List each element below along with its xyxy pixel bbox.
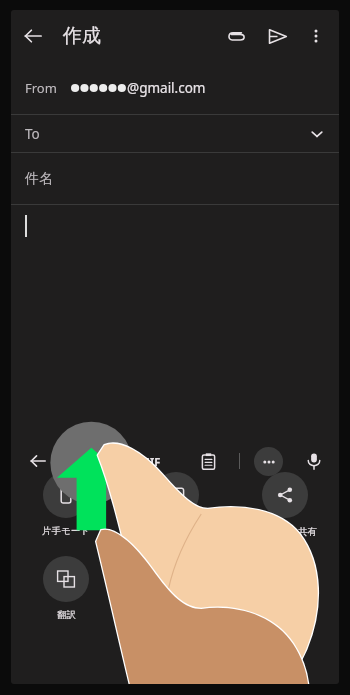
button[interactable]: GIF <box>135 445 167 477</box>
staticText: GIF <box>142 454 161 469</box>
button[interactable]: More options <box>297 17 335 55</box>
staticText: 片手モード <box>42 525 90 537</box>
button[interactable]: To <box>11 115 339 152</box>
staticText: 作成 <box>63 24 101 48</box>
button[interactable]: Clipboard <box>193 446 223 476</box>
button[interactable]: 件名 <box>11 153 339 204</box>
button[interactable]: Back <box>21 444 55 478</box>
button[interactable]: Voice input <box>299 446 329 476</box>
button[interactable]: 翻訳 <box>11 554 121 623</box>
staticText: テキスト編集 <box>147 525 205 537</box>
staticText: To <box>25 125 40 143</box>
staticText: From <box>25 79 57 97</box>
button[interactable]: Send <box>257 16 297 56</box>
staticText: @gmail.com <box>127 79 206 97</box>
staticText: 件名 <box>25 170 53 188</box>
button[interactable]: From <box>11 62 339 114</box>
button[interactable]: Emoji <box>83 446 113 476</box>
button[interactable]: フローティング <box>121 554 230 623</box>
button[interactable]: More <box>254 447 283 476</box>
button[interactable]: Back <box>11 14 55 58</box>
button[interactable]: 片手モード <box>11 470 121 539</box>
button[interactable]: Attach file <box>217 16 257 56</box>
button[interactable]: テキスト編集 <box>121 470 230 539</box>
button[interactable]: Gboard を共有 <box>230 470 339 540</box>
staticText: Gboard を共有 <box>252 525 317 538</box>
staticText: 翻訳 <box>57 609 76 621</box>
